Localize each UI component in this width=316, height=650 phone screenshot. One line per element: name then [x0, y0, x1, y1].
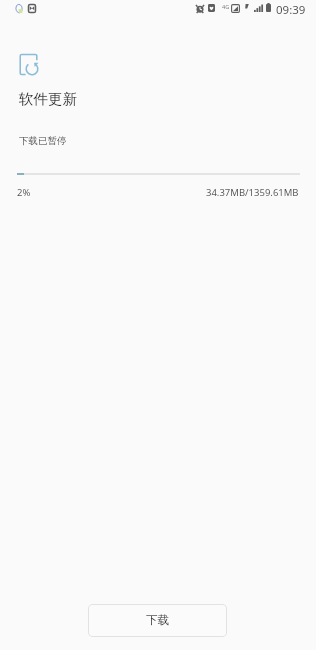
- staticText: 4G: [222, 3, 230, 10]
- other: Software update: [19, 53, 41, 75]
- staticText: 2%: [17, 186, 31, 199]
- button[interactable]: 下载: [88, 604, 227, 637]
- staticText: 34.37MB/1359.61MB: [206, 186, 299, 199]
- staticText: 下载: [146, 613, 169, 627]
- staticText: 下载已暂停: [19, 135, 67, 147]
- other: App notification: [28, 4, 36, 13]
- other: Messenger notification: [15, 4, 23, 13]
- staticText: 09:39: [276, 2, 306, 18]
- staticText: 软件更新: [19, 90, 78, 108]
